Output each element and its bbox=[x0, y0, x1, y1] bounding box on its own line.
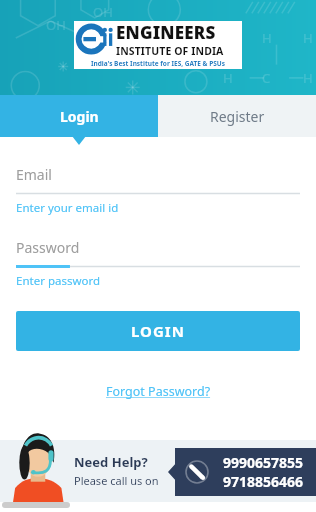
staticText: India's Best Institute for IES, GATE & P… bbox=[91, 59, 225, 68]
staticText: Need Help? bbox=[74, 453, 148, 471]
staticText: 9990657855 bbox=[223, 453, 304, 472]
staticText: Password bbox=[16, 238, 80, 257]
staticText: H bbox=[303, 29, 313, 47]
staticText: OH bbox=[93, 3, 113, 21]
button[interactable]: Forgot Password? bbox=[102, 379, 215, 404]
staticText: 9718856466 bbox=[223, 472, 304, 491]
staticText: Email bbox=[16, 165, 52, 184]
button[interactable]: Call support bbox=[168, 448, 316, 496]
staticText: Register bbox=[210, 107, 265, 126]
staticText: Please call us on bbox=[74, 473, 159, 488]
button[interactable]: Register bbox=[158, 95, 316, 137]
staticText: OH bbox=[46, 16, 66, 34]
button[interactable]: LOGIN bbox=[16, 311, 300, 351]
staticText: C bbox=[262, 69, 271, 87]
staticText: INSTITUTE OF INDIA bbox=[116, 44, 224, 57]
staticText: Login bbox=[60, 107, 99, 126]
staticText: H bbox=[262, 29, 272, 47]
button[interactable]: Login bbox=[0, 95, 158, 137]
staticText: H bbox=[303, 69, 313, 87]
staticText: ENGINEERS bbox=[116, 21, 216, 44]
staticText: H bbox=[223, 69, 233, 87]
staticText: Enter password bbox=[16, 273, 101, 289]
staticText: Enter your email id bbox=[16, 200, 119, 216]
staticText: Forgot Password? bbox=[106, 383, 211, 400]
staticText: LOGIN bbox=[131, 321, 185, 341]
